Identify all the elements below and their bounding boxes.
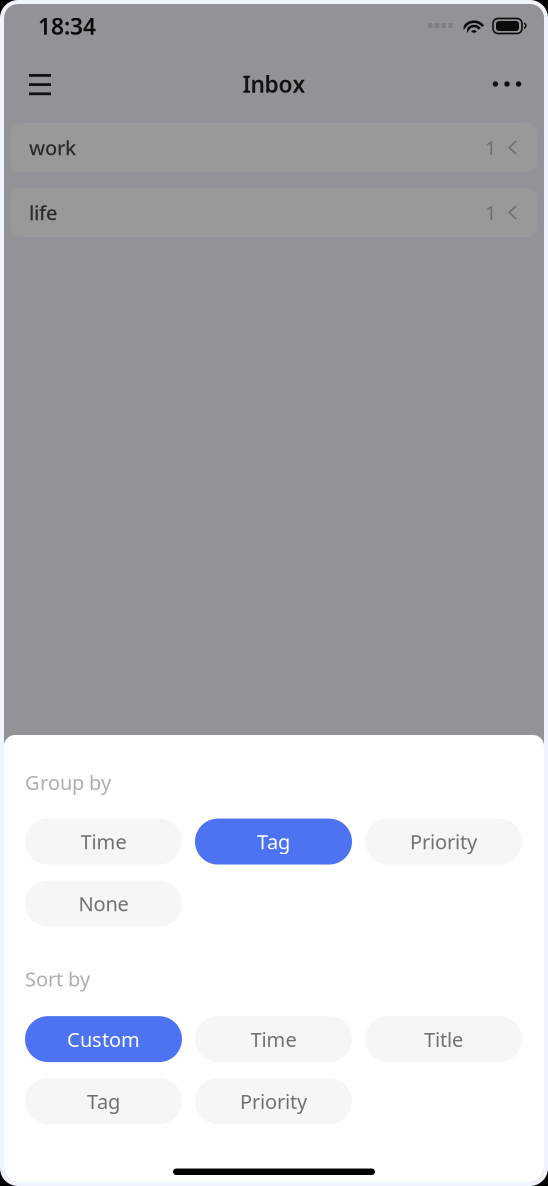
button[interactable]: Home indicator: [173, 1168, 375, 1175]
button[interactable]: life: [11, 188, 537, 237]
button[interactable]: Priority: [195, 1078, 352, 1124]
staticText: Time: [250, 1026, 296, 1052]
button[interactable]: More options: [478, 60, 536, 108]
button[interactable]: None: [25, 881, 182, 927]
button[interactable]: work: [11, 123, 537, 172]
staticText: Tag: [257, 828, 290, 855]
button[interactable]: Time: [25, 819, 182, 865]
staticText: Priority: [240, 1088, 307, 1114]
staticText: None: [78, 890, 128, 917]
staticText: Time: [80, 828, 126, 855]
staticText: Group by: [25, 769, 111, 796]
staticText: 18:34: [38, 11, 96, 41]
button[interactable]: Title: [365, 1016, 522, 1062]
staticText: Tag: [87, 1088, 120, 1114]
button[interactable]: Tag: [195, 819, 352, 865]
button[interactable]: Menu: [14, 60, 66, 108]
staticText: Title: [424, 1026, 463, 1052]
staticText: 1: [485, 134, 496, 161]
button[interactable]: Custom: [25, 1016, 182, 1062]
staticText: Priority: [410, 828, 477, 855]
staticText: 1: [485, 199, 496, 226]
button[interactable]: Priority: [365, 819, 522, 865]
staticText: Custom: [67, 1026, 140, 1052]
staticText: Sort by: [25, 966, 90, 992]
staticText: work: [29, 134, 76, 161]
staticText: Inbox: [242, 69, 305, 99]
staticText: life: [29, 199, 57, 226]
button[interactable]: Tag: [25, 1078, 182, 1124]
button[interactable]: Time: [195, 1016, 352, 1062]
